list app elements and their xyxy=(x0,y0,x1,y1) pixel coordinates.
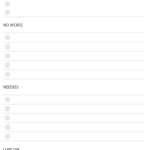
button[interactable]: Checklist item xyxy=(0,114,150,123)
button[interactable]: Checklist item xyxy=(0,105,150,114)
button[interactable]: Checklist item xyxy=(0,43,150,52)
staticText: NO MORE: xyxy=(3,22,23,28)
button[interactable]: Checklist item xyxy=(0,95,150,105)
button[interactable]: Checklist item xyxy=(0,52,150,61)
staticText: LOW ON: xyxy=(3,146,20,150)
button[interactable]: Checklist item xyxy=(0,70,150,79)
button[interactable]: Checklist item xyxy=(0,8,150,17)
button[interactable]: Checklist item xyxy=(0,0,150,8)
button[interactable]: Checklist item xyxy=(0,123,150,132)
staticText: NEEDED: xyxy=(3,84,19,90)
button[interactable]: Checklist item xyxy=(0,132,150,141)
button[interactable]: Checklist item xyxy=(0,33,150,43)
button[interactable]: Checklist item xyxy=(0,61,150,70)
